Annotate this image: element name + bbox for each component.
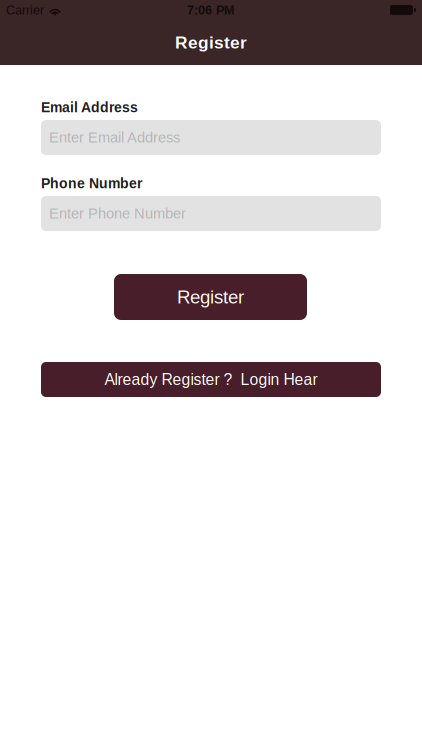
- button[interactable]: Already Register ? Login Hear: [41, 362, 381, 397]
- staticText: Enter Phone Number: [49, 205, 186, 222]
- staticText: Register: [177, 287, 244, 307]
- button[interactable]: Register: [114, 274, 307, 320]
- staticText: Email Address: [41, 100, 138, 115]
- staticText: Already Register ? Login Hear: [104, 371, 317, 388]
- staticText: Phone Number: [41, 176, 142, 191]
- staticText: 7:06 PM: [187, 3, 235, 17]
- button[interactable]: Enter Phone Number: [41, 196, 381, 231]
- staticText: Enter Email Address: [49, 129, 180, 146]
- staticText: Register: [175, 33, 247, 52]
- button[interactable]: Enter Email Address: [41, 120, 381, 155]
- staticText: Carrier: [6, 3, 44, 17]
